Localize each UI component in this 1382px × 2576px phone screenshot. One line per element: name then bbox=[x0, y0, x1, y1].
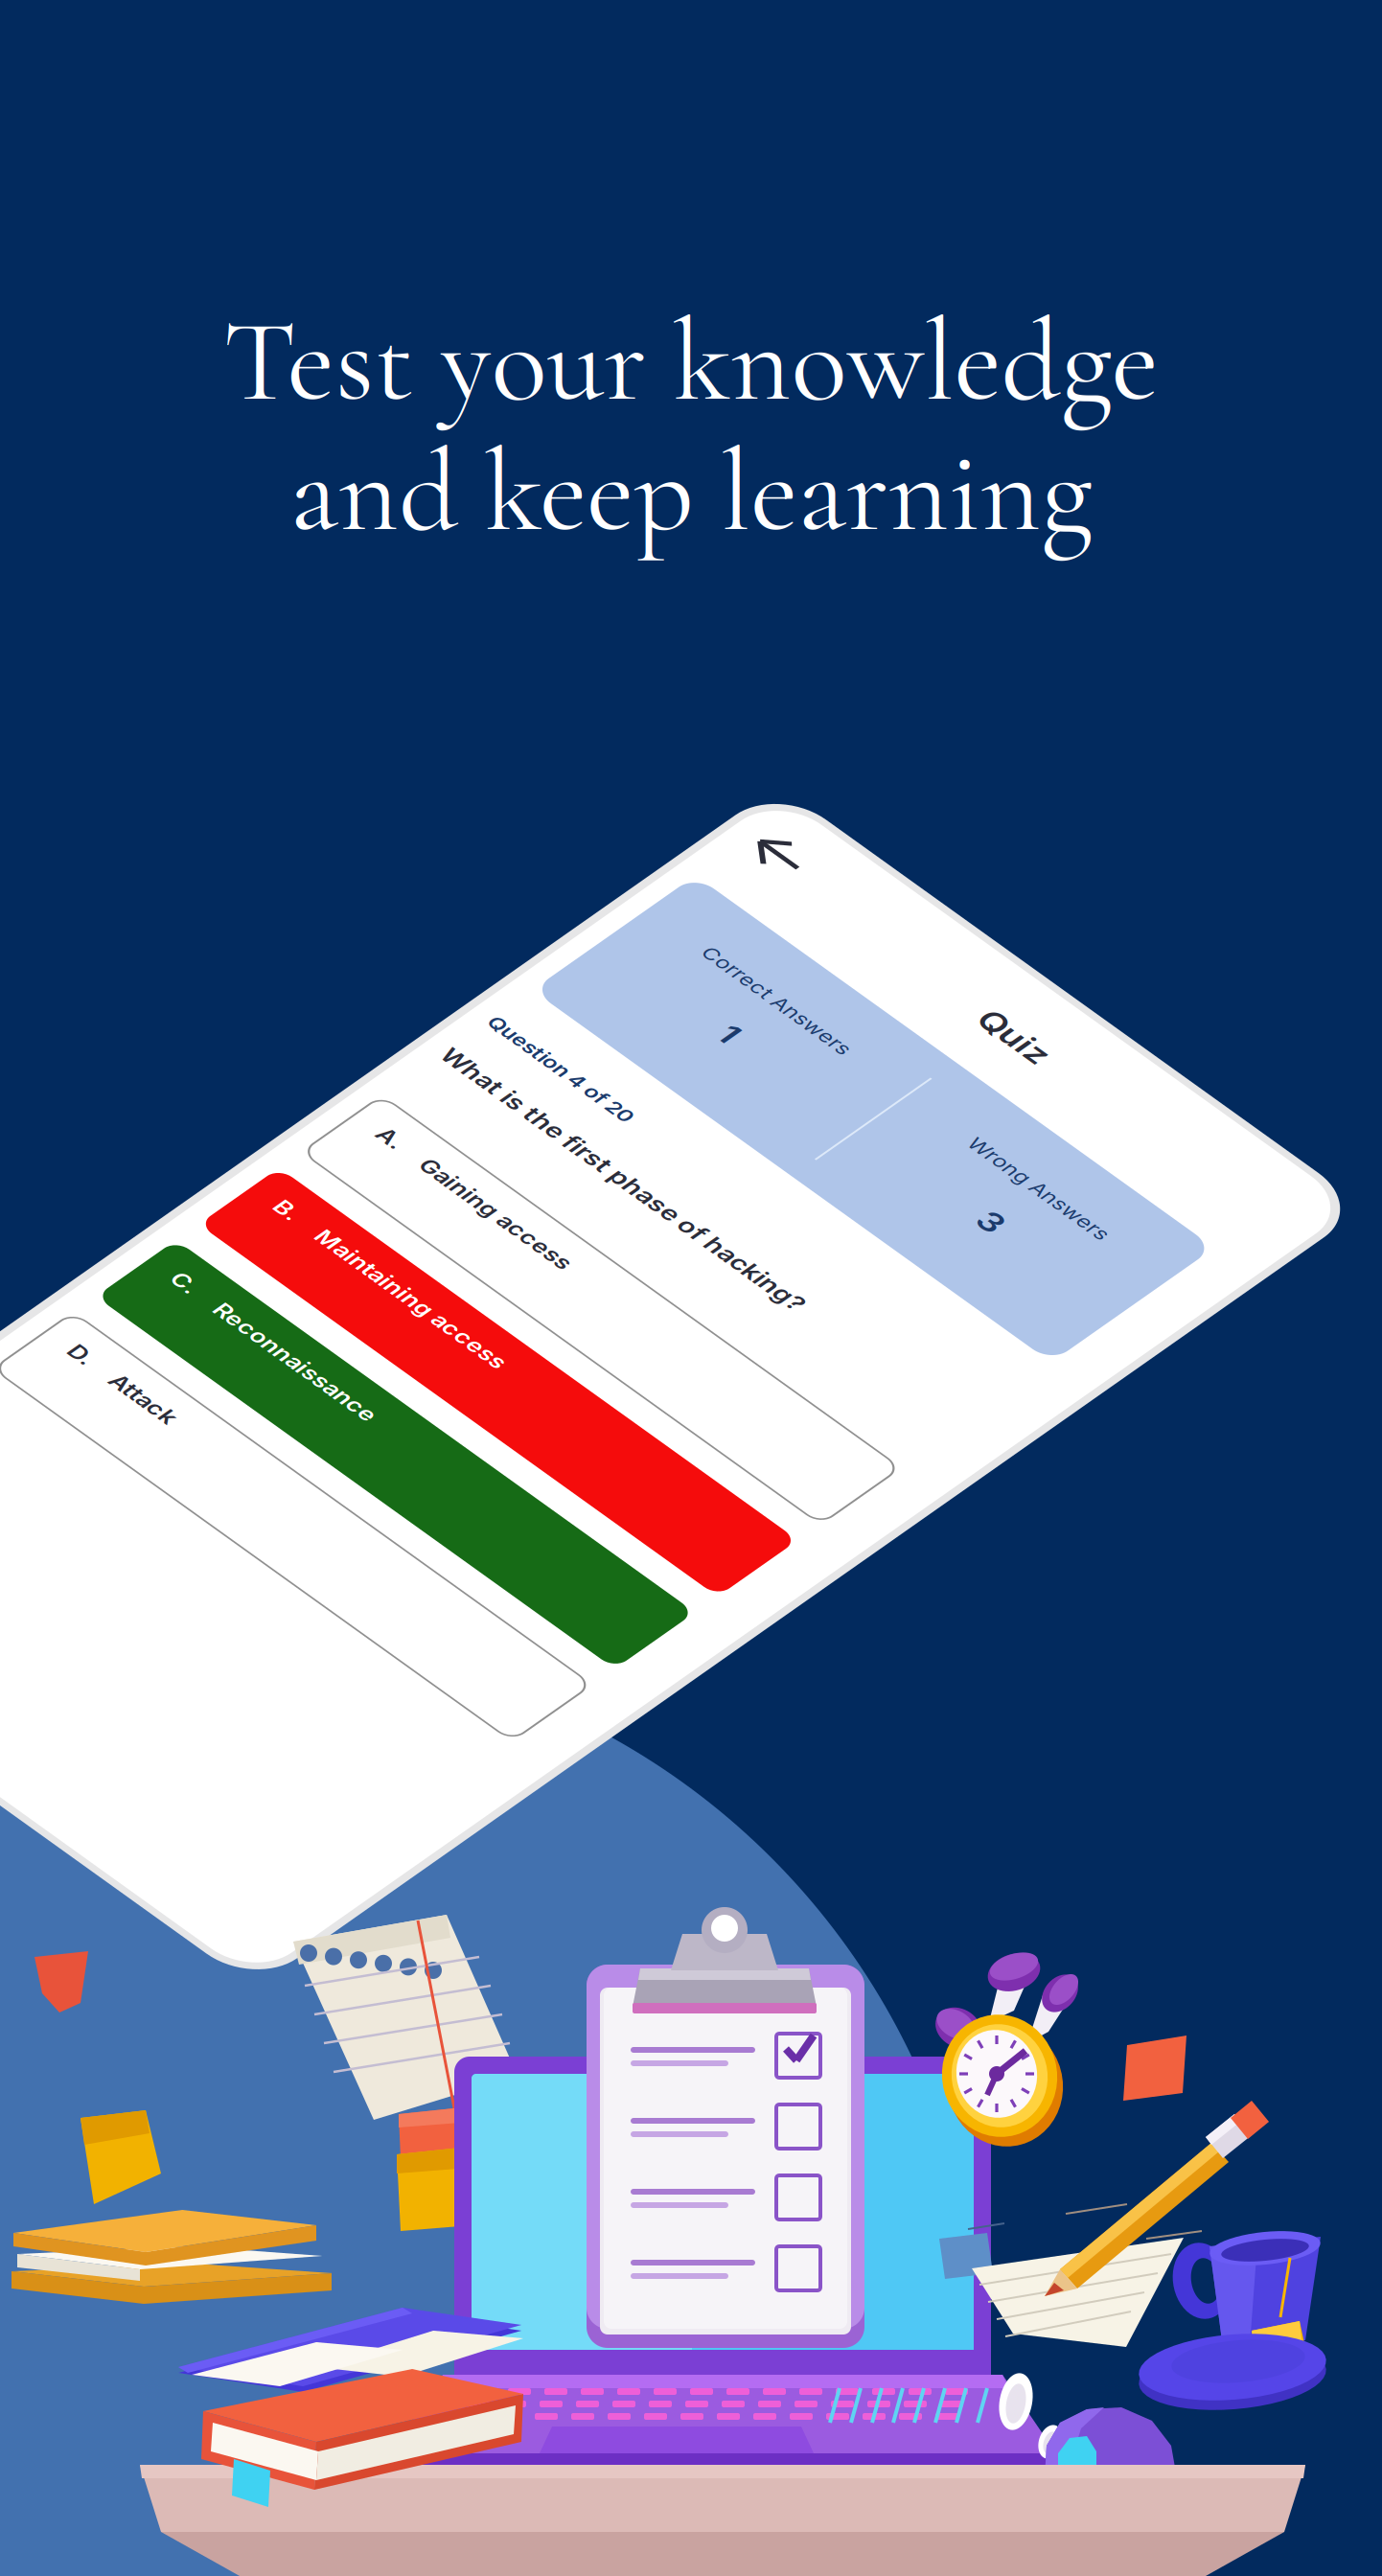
staticText: What is the first phase of hacking? bbox=[790, 1069, 1046, 1087]
staticText: Question 4 of 20 bbox=[790, 1033, 891, 1048]
staticText: Test your knowledge bbox=[223, 291, 1159, 432]
staticText: A. bbox=[807, 1141, 823, 1158]
staticText: Maintaining access bbox=[837, 1225, 969, 1242]
button[interactable]: D. bbox=[779, 794, 1191, 1685]
button[interactable]: Back bbox=[779, 794, 840, 856]
staticText: D. bbox=[807, 1391, 822, 1408]
button[interactable]: A. bbox=[779, 794, 1191, 1685]
button[interactable]: C. bbox=[779, 794, 1191, 1685]
staticText: Gaining access bbox=[838, 1141, 943, 1158]
staticText: and keep learning bbox=[289, 421, 1093, 562]
button[interactable]: B. bbox=[779, 794, 1191, 1685]
